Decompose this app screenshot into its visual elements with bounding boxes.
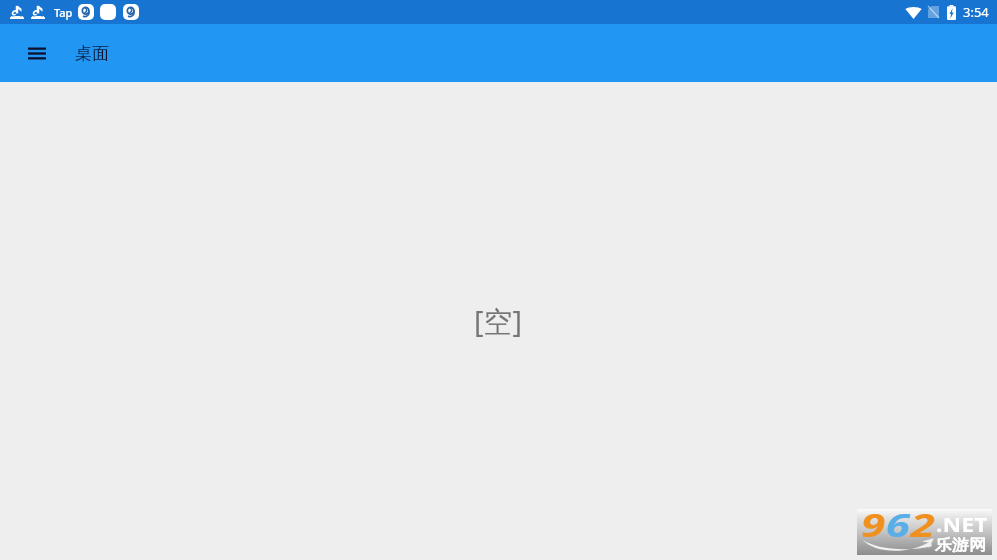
staticText: .NET bbox=[936, 512, 988, 538]
button[interactable]: Open navigation drawer bbox=[17, 33, 57, 73]
staticText: Tap bbox=[54, 5, 73, 20]
staticText: 桌面 bbox=[75, 43, 109, 64]
staticText: 2 bbox=[911, 503, 935, 546]
staticText: 9 bbox=[861, 503, 886, 546]
staticText: 乐游网 bbox=[935, 536, 986, 555]
staticText: 6 bbox=[886, 503, 911, 546]
staticText: 3:54 bbox=[963, 3, 989, 21]
staticText: [空] bbox=[474, 301, 523, 341]
